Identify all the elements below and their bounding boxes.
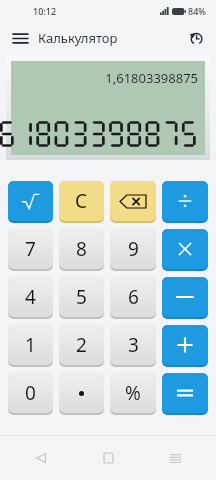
- staticText: 4: [25, 284, 36, 310]
- staticText: 6: [128, 284, 139, 310]
- staticText: 0: [25, 380, 36, 406]
- staticText: 1,61803398875: [105, 69, 198, 87]
- staticText: 5: [76, 284, 87, 310]
- button[interactable]: 3: [110, 325, 156, 365]
- button[interactable]: Backspace: [110, 181, 156, 221]
- button[interactable]: C: [59, 181, 104, 221]
- button[interactable]: Square root: [8, 181, 53, 221]
- staticText: 9: [128, 236, 139, 262]
- button[interactable]: 9: [110, 229, 156, 269]
- button[interactable]: 6: [110, 277, 156, 317]
- button[interactable]: 2: [59, 325, 104, 365]
- staticText: 1: [25, 332, 36, 358]
- button[interactable]: Recents: [160, 443, 190, 473]
- staticText: 2: [76, 332, 87, 358]
- staticText: %: [125, 380, 141, 406]
- staticText: 3: [128, 332, 139, 358]
- button[interactable]: Plus: [162, 325, 208, 365]
- staticText: 7: [25, 236, 36, 262]
- button[interactable]: 1: [8, 325, 53, 365]
- staticText: 10:12: [33, 5, 57, 17]
- button[interactable]: Multiply: [162, 229, 208, 269]
- button[interactable]: Minus: [162, 277, 208, 317]
- button[interactable]: Back: [26, 443, 56, 473]
- button[interactable]: 4: [8, 277, 53, 317]
- staticText: C: [75, 188, 88, 214]
- button[interactable]: Divide: [162, 181, 208, 221]
- button[interactable]: Home: [93, 443, 123, 473]
- button[interactable]: 5: [59, 277, 104, 317]
- button[interactable]: Equals: [162, 373, 208, 413]
- button[interactable]: 0: [8, 373, 53, 413]
- staticText: 84%: [188, 5, 206, 17]
- button[interactable]: 8: [59, 229, 104, 269]
- button[interactable]: %: [110, 373, 156, 413]
- staticText: Калькулятор: [38, 29, 118, 47]
- button[interactable]: Decimal point: [59, 373, 104, 413]
- button[interactable]: History: [182, 24, 210, 52]
- button[interactable]: 7: [8, 229, 53, 269]
- staticText: 8: [76, 236, 87, 262]
- button[interactable]: Menu: [6, 24, 34, 52]
